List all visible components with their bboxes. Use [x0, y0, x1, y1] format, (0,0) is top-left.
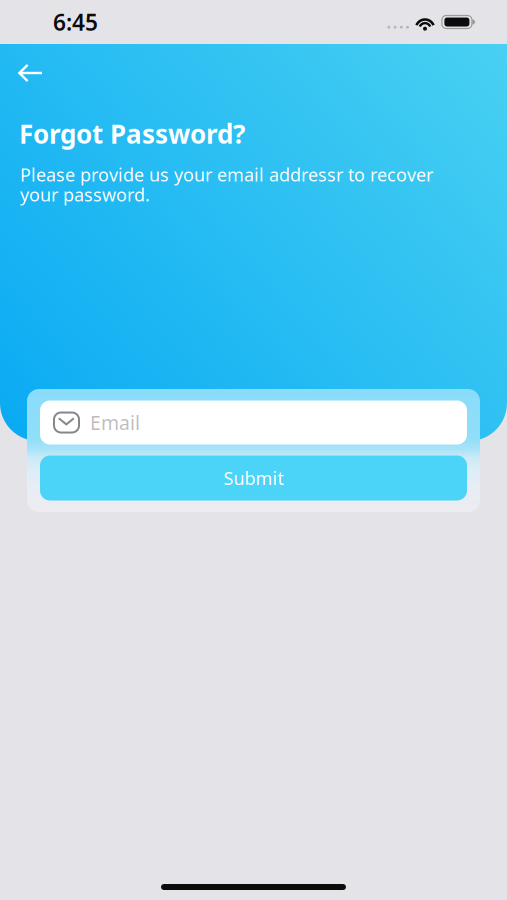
button[interactable]: Back: [0, 54, 63, 92]
staticText: Submit: [223, 466, 283, 490]
staticText: Forgot Password?: [19, 116, 245, 151]
staticText: Email: [90, 409, 140, 436]
staticText: Please provide us your email addressr to…: [20, 164, 433, 205]
button[interactable]: Submit: [40, 455, 467, 500]
staticText: 6:45: [53, 7, 98, 37]
